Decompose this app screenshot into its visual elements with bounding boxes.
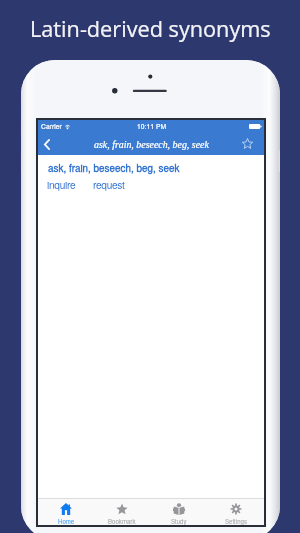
button[interactable]: Bookmark [94,499,150,525]
staticText: 10:11 PM [137,121,167,131]
staticText: ask, frain, beseech, beg, seek [94,139,209,150]
button[interactable]: Home [38,499,94,525]
staticText: Carrier [41,121,62,131]
button[interactable]: Add to favourites [238,133,257,153]
button[interactable]: Settings [207,499,264,525]
button[interactable]: inquire [47,177,76,192]
staticText: Settings [225,517,247,525]
button[interactable]: Back [38,134,56,154]
staticText: Study [171,517,187,525]
button[interactable]: request [93,177,125,192]
button[interactable]: Study [150,499,207,525]
staticText: Latin-derived synonyms [30,14,271,44]
staticText: Bookmark [108,517,136,525]
staticText: Home [58,517,75,525]
staticText: ask, frain, beseech, beg, seek [48,161,180,175]
